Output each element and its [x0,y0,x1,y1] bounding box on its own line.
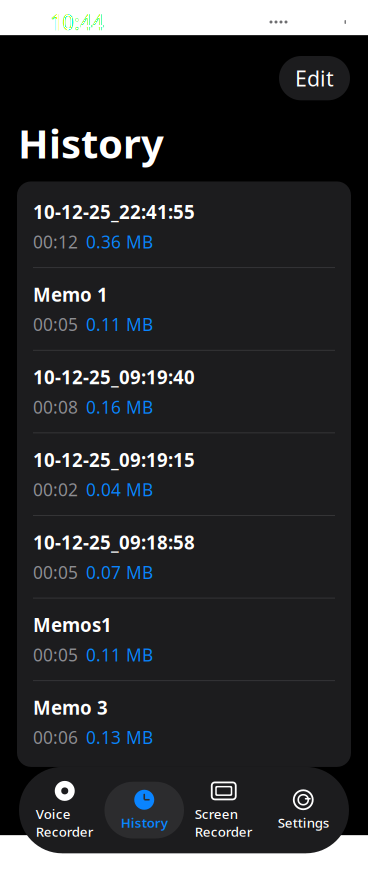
staticText: 00:02 [33,478,78,501]
staticText: 00:05 [33,643,78,666]
button[interactable]: Memos1 [17,598,351,681]
staticText: 10:44 [50,8,104,36]
staticText: 0.11 MB [86,313,153,336]
button[interactable]: Screen Recorder [184,773,263,847]
button[interactable]: 10-12-25_09:19:15 [17,433,351,516]
button[interactable]: 10-12-25_22:41:55 [17,185,351,268]
button[interactable]: Settings [263,782,343,838]
staticText: 10-12-25_09:19:40 [33,365,195,389]
button[interactable]: 10-12-25_09:18:58 [17,516,351,598]
button[interactable]: Memo 1 [17,268,351,351]
staticText: 0.04 MB [86,478,153,501]
button[interactable]: Memo 3 [17,681,351,763]
staticText: Memo 1 [33,282,108,307]
staticText: History [121,814,168,831]
staticText: 00:05 [33,313,78,336]
staticText: Screen Recorder [195,805,253,840]
staticText: 10-12-25_09:19:15 [33,447,195,472]
staticText: Settings [278,814,329,831]
staticText: 00:05 [33,561,78,584]
staticText: Memo 3 [33,695,108,720]
button[interactable]: 10-12-25_09:19:40 [17,351,351,433]
staticText: 00:06 [33,726,78,749]
button[interactable]: History [104,782,184,838]
staticText: 00:12 [33,230,78,253]
staticText: 0.07 MB [86,561,153,584]
staticText: 0.36 MB [86,230,153,253]
button[interactable]: Voice Recorder [25,773,104,847]
staticText: 0.16 MB [86,395,153,418]
staticText: 0.13 MB [86,726,153,749]
staticText: History [18,116,164,169]
staticText: 00:08 [33,395,78,418]
staticText: 10-12-25_22:41:55 [33,199,195,224]
staticText: 0.11 MB [86,643,153,666]
staticText: Edit [295,64,334,92]
staticText: Memos1 [33,612,112,637]
staticText: 10-12-25_09:18:58 [33,530,195,555]
button[interactable]: Edit [279,56,350,100]
staticText: Voice Recorder [36,805,94,840]
